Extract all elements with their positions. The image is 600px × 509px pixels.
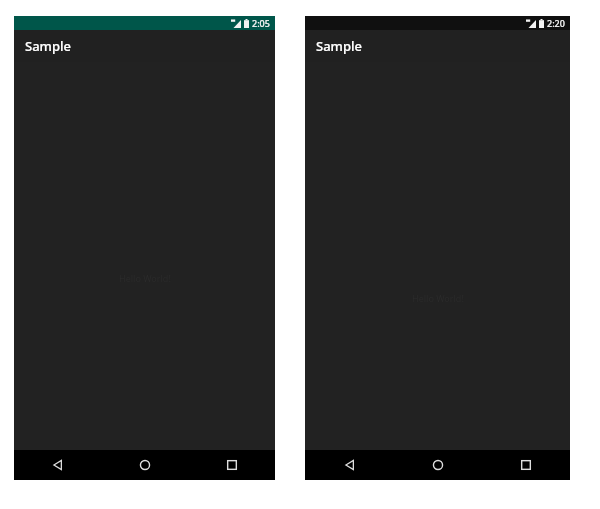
button[interactable]: Back xyxy=(14,450,101,480)
staticText: Sample xyxy=(316,37,362,55)
staticText: 2:05 xyxy=(252,17,270,29)
button[interactable]: Recent apps xyxy=(482,450,570,480)
button[interactable]: Back xyxy=(305,450,394,480)
button[interactable]: Recent apps xyxy=(188,450,275,480)
button[interactable]: Sample xyxy=(14,30,275,62)
button[interactable]: Sample xyxy=(305,30,570,62)
staticText: 2:20 xyxy=(547,17,565,29)
button[interactable]: Home xyxy=(394,450,482,480)
staticText: Sample xyxy=(25,37,71,55)
button[interactable]: Home xyxy=(101,450,188,480)
